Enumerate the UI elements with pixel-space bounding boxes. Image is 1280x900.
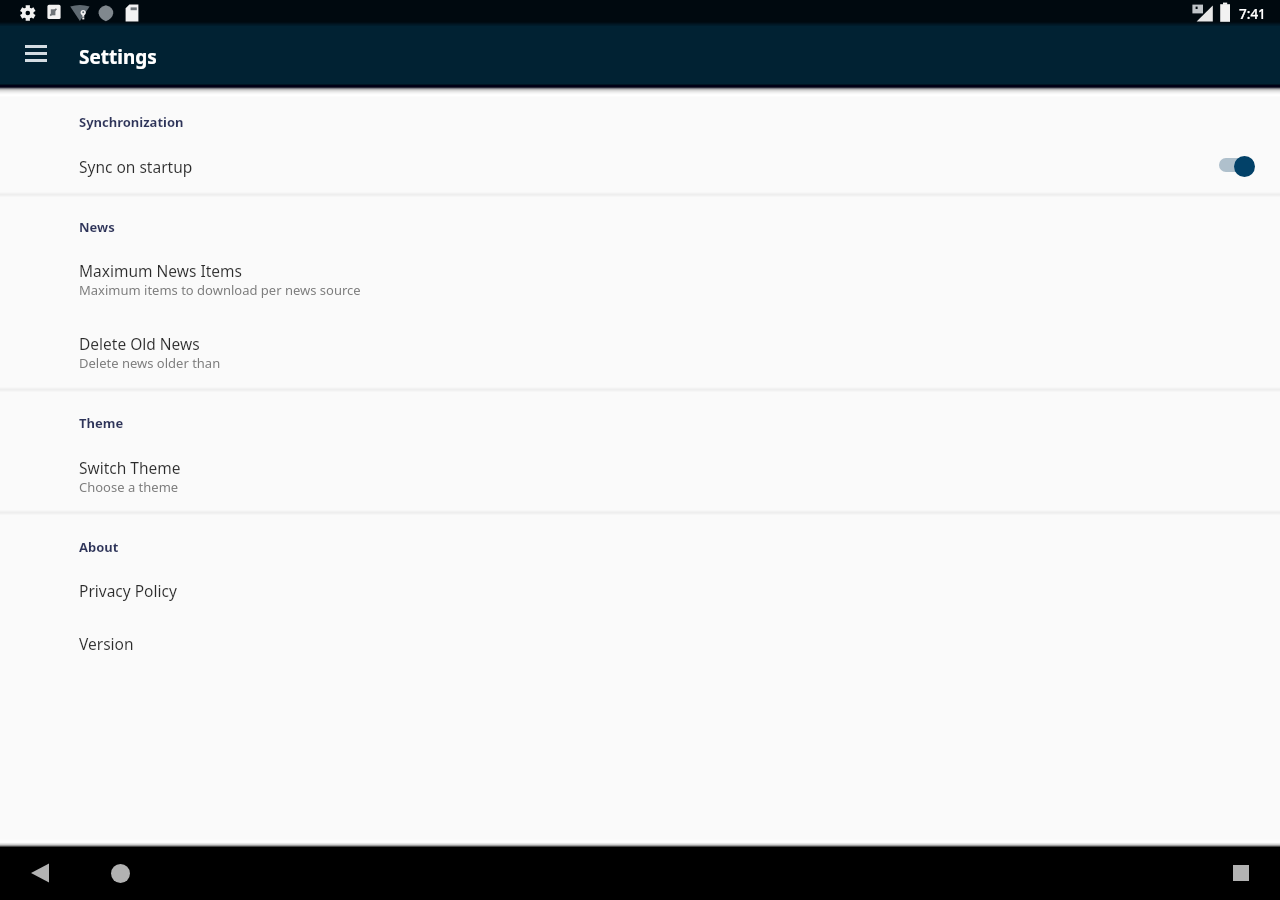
button[interactable]: Delete Old News xyxy=(0,317,1280,384)
staticText: Synchronization xyxy=(79,113,184,131)
staticText: Sync on startup xyxy=(79,156,193,177)
staticText: News xyxy=(79,218,115,236)
button[interactable]: Privacy Policy xyxy=(0,565,1280,617)
button[interactable]: Sync on startup toggle xyxy=(1219,155,1255,177)
staticText: Maximum items to download per news sourc… xyxy=(79,281,361,299)
staticText: Privacy Policy xyxy=(79,580,177,601)
button[interactable]: Home xyxy=(98,851,142,895)
staticText: Version xyxy=(79,633,134,654)
button[interactable]: Back xyxy=(18,851,62,895)
button[interactable]: Switch Theme xyxy=(0,440,1280,511)
button[interactable]: Sync on startup xyxy=(0,140,1280,193)
staticText: 7:41 xyxy=(1239,5,1266,23)
staticText: Switch Theme xyxy=(79,457,181,478)
button[interactable]: Version xyxy=(0,617,1280,670)
button[interactable]: Recent apps xyxy=(1219,851,1263,895)
staticText: Maximum News Items xyxy=(79,260,242,281)
staticText: Settings xyxy=(79,44,157,70)
staticText: Delete news older than xyxy=(79,354,221,372)
button[interactable]: Open navigation drawer xyxy=(14,31,58,75)
staticText: Theme xyxy=(79,414,124,432)
staticText: Delete Old News xyxy=(79,333,200,354)
staticText: About xyxy=(79,538,119,556)
button[interactable]: Maximum News Items xyxy=(0,245,1280,317)
staticText: Choose a theme xyxy=(79,478,179,496)
